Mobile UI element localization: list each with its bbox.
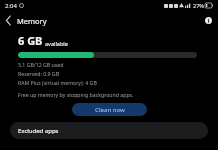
staticText: Reserved: 0.9 GB [18, 70, 60, 77]
staticText: Clean now [95, 106, 125, 114]
staticText: RAM Plus (virtual memory): 4 GB [18, 79, 97, 86]
staticText: 2:04 [5, 2, 17, 10]
staticText: available [45, 40, 68, 47]
staticText: 5.1 GB/12 GB used [18, 61, 64, 68]
staticText: Free up memory by stopping background ap… [18, 91, 134, 98]
button[interactable]: More information [198, 11, 218, 30]
button[interactable]: Excluded apps [10, 122, 208, 139]
staticText: 27% [193, 2, 204, 9]
staticText: Memory [17, 16, 47, 26]
staticText: 6 GB [18, 33, 43, 48]
button[interactable]: Clean now [72, 103, 147, 116]
button[interactable]: Back [0, 11, 17, 30]
staticText: Excluded apps [18, 127, 59, 135]
